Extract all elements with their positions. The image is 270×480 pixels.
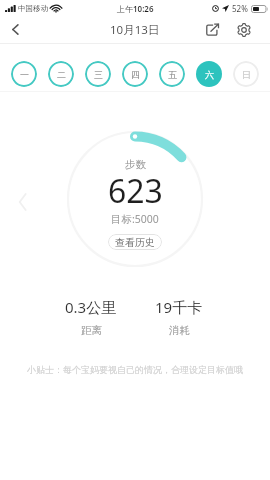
button[interactable]: Settings [230,16,257,43]
staticText: 52% [232,3,248,14]
button[interactable]: 三 [85,61,111,87]
button[interactable]: 五 [159,61,185,87]
staticText: 0.3公里 [65,297,117,317]
staticText: 19千卡 [155,297,203,317]
staticText: 三 [94,69,103,80]
staticText: 日 [242,69,251,80]
staticText: 二 [57,69,66,80]
staticText: 中国移动 [18,4,48,13]
staticText: 步数 [125,158,146,171]
staticText: 目标:5000 [111,212,159,226]
button[interactable]: 查看历史 [108,234,162,250]
staticText: 查看历史 [115,236,155,249]
staticText: 小贴士：每个宝妈要视自己的情况，合理设定目标值哦 [0,364,270,375]
button[interactable]: 一 [11,61,37,87]
staticText: 一 [20,69,29,80]
button[interactable]: Back [0,16,30,43]
button[interactable]: 日 [233,61,259,87]
staticText: 10月13日 [110,22,160,38]
staticText: 上午10:26 [117,3,154,14]
staticText: 六 [205,69,214,80]
button[interactable]: 四 [122,61,148,87]
button[interactable]: Previous day [10,190,34,214]
staticText: 距离 [81,324,102,337]
button[interactable]: 六 [196,61,222,87]
staticText: 四 [131,69,140,80]
button[interactable]: 二 [48,61,74,87]
staticText: 五 [168,69,177,80]
staticText: 623 [108,169,163,213]
button[interactable]: Share [199,16,226,43]
staticText: 消耗 [169,324,190,337]
